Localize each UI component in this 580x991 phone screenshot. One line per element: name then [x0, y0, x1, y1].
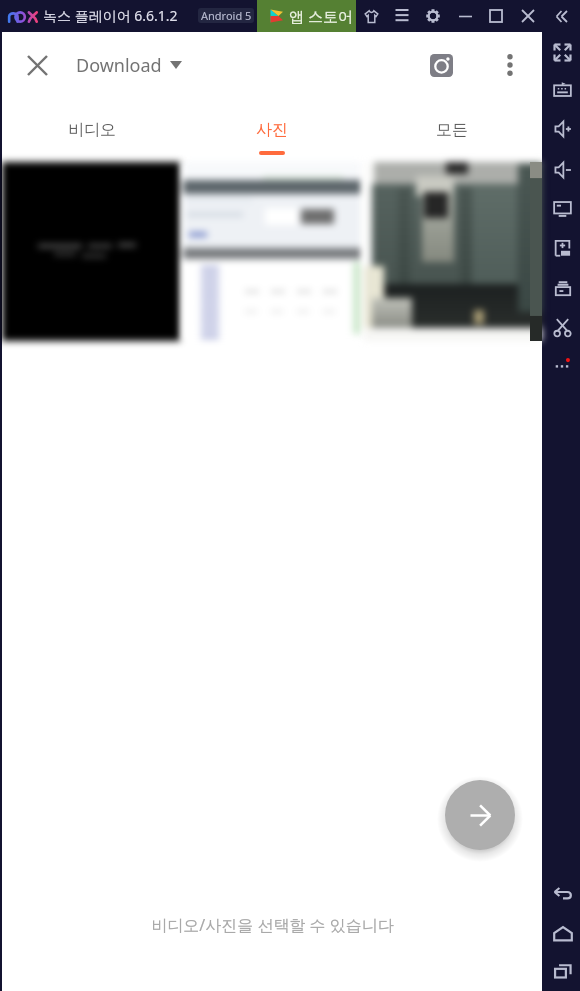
staticText: 앱 스토어 [289, 6, 353, 26]
button[interactable]: Skin [357, 0, 385, 32]
button[interactable]: 앱 스토어 [257, 0, 356, 32]
button[interactable]: Fullscreen [545, 35, 580, 69]
button[interactable]: Download [68, 32, 190, 98]
staticText: Download [76, 53, 162, 78]
button[interactable]: Close [514, 0, 542, 32]
button[interactable]: 모든 [362, 98, 542, 162]
button[interactable]: Volume down [545, 153, 580, 187]
button[interactable]: Back [545, 877, 580, 911]
button[interactable]: Keyboard [545, 72, 580, 106]
button[interactable]: Screenshot [545, 310, 580, 344]
staticText: 비디오 [68, 120, 116, 140]
button[interactable]: Camera [417, 32, 465, 98]
staticText: Android 5 [201, 8, 252, 23]
button[interactable]: More [545, 346, 580, 380]
button[interactable]: Rotate screen [545, 191, 580, 225]
button[interactable]: Settings [419, 0, 447, 32]
button[interactable]: Recents [545, 954, 580, 988]
button[interactable]: Collapse sidebar [547, 0, 575, 32]
button[interactable]: 사진 [182, 98, 362, 162]
button[interactable]: Next [445, 780, 515, 850]
button[interactable]: Shared folder [545, 271, 580, 305]
button[interactable]: Photo 2 [183, 162, 361, 341]
staticText: 사진 [256, 120, 288, 140]
staticText: 비디오/사진을 선택할 수 있습니다 [151, 914, 394, 936]
button[interactable]: Close [14, 32, 60, 98]
button[interactable]: Volume up [545, 112, 580, 146]
button[interactable]: Menu [388, 0, 416, 32]
button[interactable]: Maximize [482, 0, 510, 32]
button[interactable]: 비디오 [2, 98, 182, 162]
staticText: 녹스 플레이어 6.6.1.2 [43, 6, 178, 25]
staticText: 모든 [436, 120, 468, 140]
button[interactable]: Install APK [545, 231, 580, 265]
button[interactable]: Minimize [451, 0, 479, 32]
button[interactable]: Photo 1 [2, 162, 180, 341]
button[interactable]: Photo 3 [364, 162, 542, 341]
button[interactable]: Home [545, 917, 580, 951]
button[interactable]: More options [488, 32, 532, 98]
